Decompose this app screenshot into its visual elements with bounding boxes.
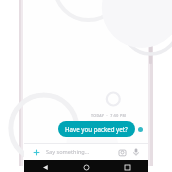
button[interactable]: Add attachment: [30, 146, 42, 158]
button[interactable]: Voice message: [130, 146, 142, 158]
staticText: Have you packed yet?: [65, 125, 128, 133]
button[interactable]: Have you packed yet?: [58, 121, 135, 137]
other: Message delivered: [138, 127, 143, 132]
button[interactable]: Recent apps: [120, 160, 134, 172]
staticText: Say something…: [46, 148, 90, 156]
button[interactable]: Back: [38, 160, 52, 172]
button[interactable]: Home: [79, 160, 93, 172]
button[interactable]: Attach image: [116, 146, 128, 158]
staticText: TODAY · 7:50 PM: [91, 113, 126, 118]
